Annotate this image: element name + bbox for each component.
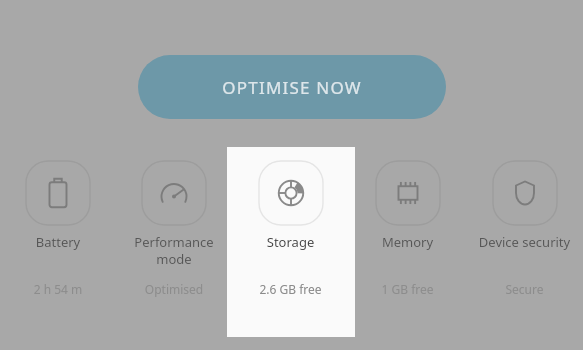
staticText: Battery	[0, 233, 116, 251]
staticText: Storage	[232, 233, 349, 251]
button[interactable]: Storage	[232, 161, 349, 321]
staticText: Secure	[466, 281, 583, 297]
staticText: Optimised	[116, 281, 232, 297]
button[interactable]: Battery	[0, 161, 116, 321]
button[interactable]: OPTIMISE NOW	[138, 55, 446, 119]
button[interactable]: Memory	[349, 161, 466, 321]
staticText: 1 GB free	[349, 281, 466, 297]
button[interactable]: Performance mode	[116, 161, 232, 321]
staticText: Device security	[466, 233, 583, 251]
staticText: 2.6 GB free	[232, 281, 349, 297]
staticText: Memory	[349, 233, 466, 251]
button[interactable]: Device security	[466, 161, 583, 321]
staticText: OPTIMISE NOW	[222, 76, 362, 99]
staticText: 2 h 54 m	[0, 281, 116, 297]
staticText: Performance mode	[116, 233, 232, 268]
